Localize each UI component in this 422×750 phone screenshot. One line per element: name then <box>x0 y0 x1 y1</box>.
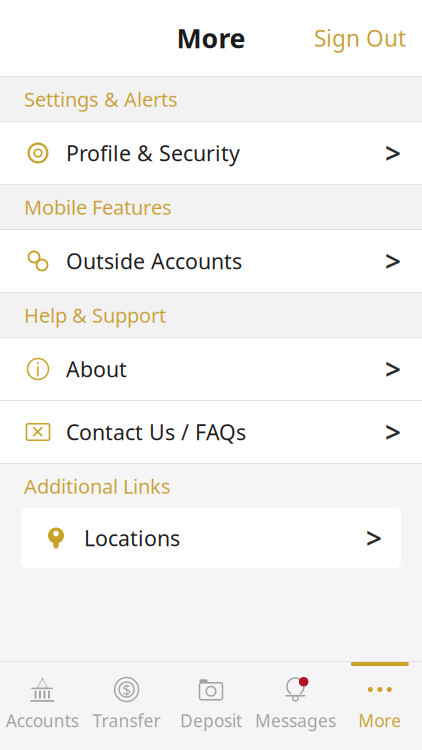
button[interactable]: Locations <box>21 508 401 568</box>
staticText: △ <box>37 673 48 690</box>
staticText: Mobile Features <box>24 194 172 220</box>
staticText: > <box>385 242 401 280</box>
button[interactable]: Profile & Security <box>0 122 422 184</box>
staticText: Transfer <box>93 709 161 732</box>
button[interactable]: i <box>0 338 422 400</box>
staticText: > <box>385 134 401 172</box>
staticText: Accounts <box>6 709 79 732</box>
button[interactable]: Messages <box>253 662 338 750</box>
staticText: Additional Links <box>24 473 171 499</box>
staticText: $ <box>123 680 131 699</box>
staticText: Profile & Security <box>66 139 240 167</box>
staticText: Help & Support <box>24 302 166 328</box>
staticText: About <box>66 355 127 383</box>
button[interactable]: △ <box>0 662 84 750</box>
button[interactable]: Sign Out <box>298 12 422 64</box>
staticText: > <box>366 519 382 557</box>
staticText: > <box>385 413 401 451</box>
staticText: Messages <box>255 709 336 732</box>
button[interactable]: ✕ <box>0 401 422 463</box>
staticText: Sign Out <box>314 23 406 53</box>
staticText: Locations <box>84 524 180 552</box>
staticText: Settings & Alerts <box>24 86 178 112</box>
button[interactable]: Outside Accounts <box>0 230 422 292</box>
staticText: ✕ <box>30 422 45 442</box>
button[interactable]: $ <box>84 662 169 750</box>
button[interactable]: Deposit <box>169 662 253 750</box>
button[interactable]: More <box>338 662 422 750</box>
staticText: i <box>35 357 40 381</box>
staticText: More <box>358 709 401 732</box>
staticText: Outside Accounts <box>66 247 242 275</box>
staticText: More <box>176 20 245 56</box>
staticText: Contact Us / FAQs <box>66 418 246 446</box>
staticText: > <box>385 350 401 388</box>
staticText: Deposit <box>180 709 242 732</box>
